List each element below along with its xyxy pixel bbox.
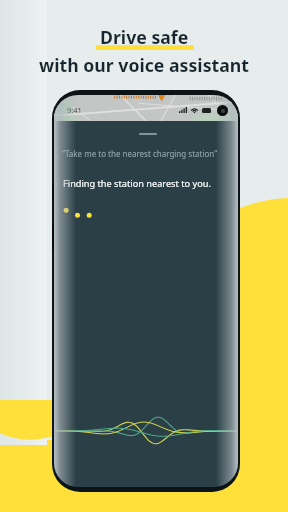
staticText: “Take me to the nearest charging station… <box>62 148 218 159</box>
staticText: 9:41 <box>67 105 82 115</box>
staticText: with our voice assistant <box>39 53 249 77</box>
staticText: Drive safe <box>100 25 189 49</box>
staticText: Finding the station nearest to you. <box>63 177 211 190</box>
